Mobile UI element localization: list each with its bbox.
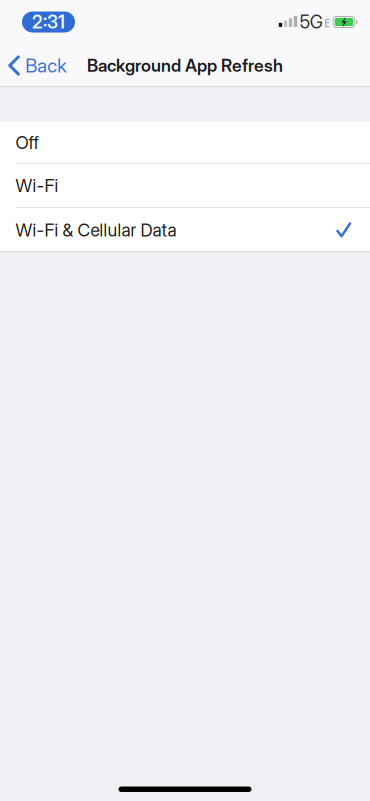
staticText: Background App Refresh: [87, 55, 283, 76]
staticText: E: [324, 16, 330, 30]
staticText: Off: [15, 132, 38, 153]
button[interactable]: Back: [0, 44, 75, 86]
staticText: Back: [25, 54, 67, 77]
staticText: Wi-Fi: [15, 175, 58, 196]
button[interactable]: Wi-Fi: [0, 164, 370, 208]
staticText: 2:31: [32, 11, 65, 33]
button[interactable]: Wi-Fi & Cellular Data: [0, 208, 370, 252]
staticText: 5G: [300, 11, 323, 33]
staticText: Wi-Fi & Cellular Data: [15, 219, 176, 241]
button[interactable]: Off: [0, 122, 370, 164]
